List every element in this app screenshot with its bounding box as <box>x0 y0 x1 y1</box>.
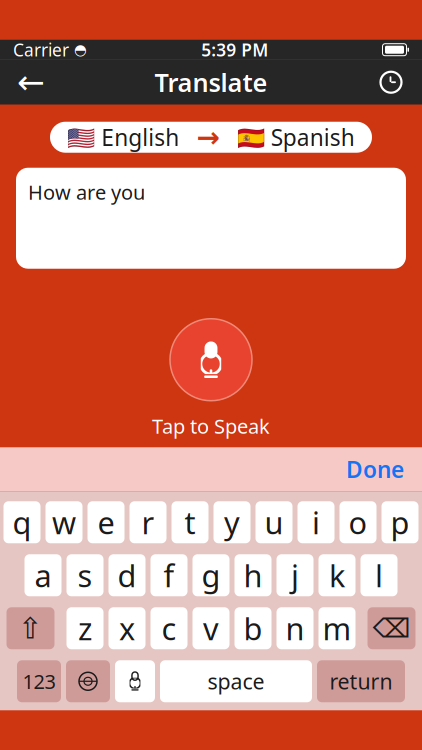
button[interactable]: Delete <box>367 607 415 649</box>
button[interactable]: g <box>192 554 229 596</box>
staticText: p <box>390 502 409 543</box>
button[interactable]: 123 <box>17 660 61 702</box>
staticText: return <box>329 667 392 695</box>
staticText: z <box>78 608 92 649</box>
staticText: y <box>224 502 240 543</box>
staticText: s <box>77 555 92 596</box>
staticText: q <box>12 502 31 543</box>
button[interactable]: n <box>276 607 313 649</box>
staticText: r <box>141 502 154 543</box>
button[interactable]: d <box>108 554 145 596</box>
staticText: 5:39 PM <box>201 38 268 61</box>
staticText: e <box>97 502 114 543</box>
button[interactable]: q <box>3 501 40 543</box>
button[interactable]: z <box>66 607 103 649</box>
staticText: 🇪🇸 Spanish <box>237 122 355 152</box>
staticText: ⇧ <box>18 612 43 645</box>
button[interactable]: space <box>160 660 312 702</box>
button[interactable]: e <box>87 501 124 543</box>
staticText: 123 <box>22 668 55 695</box>
button[interactable]: Shift <box>6 607 54 649</box>
button[interactable]: b <box>234 607 271 649</box>
button[interactable]: r <box>129 501 166 543</box>
staticText: How are you <box>28 179 145 205</box>
staticText: o <box>348 502 367 543</box>
button[interactable]: m <box>318 607 355 649</box>
staticText: c <box>161 608 176 649</box>
staticText: j <box>291 555 299 596</box>
staticText: Carrier <box>13 38 69 61</box>
button[interactable]: Back <box>0 60 62 105</box>
button[interactable]: t <box>171 501 208 543</box>
staticText: Done <box>346 454 404 484</box>
staticText: u <box>264 502 283 543</box>
staticText: ◓ <box>69 41 87 58</box>
staticText: k <box>329 555 345 596</box>
button[interactable]: l <box>360 554 397 596</box>
staticText: ⌫ <box>372 613 410 643</box>
staticText: → <box>196 121 219 153</box>
staticText: f <box>163 555 174 596</box>
staticText: x <box>119 608 135 649</box>
staticText: m <box>322 608 351 649</box>
staticText: Tap to Speak <box>152 413 270 439</box>
staticText: l <box>375 555 383 596</box>
button[interactable]: s <box>66 554 103 596</box>
staticText: d <box>117 555 136 596</box>
button[interactable]: a <box>24 554 61 596</box>
staticText: a <box>34 555 51 596</box>
staticText: b <box>243 608 262 649</box>
button[interactable]: w <box>45 501 82 543</box>
staticText: v <box>203 608 219 649</box>
button[interactable]: y <box>213 501 250 543</box>
staticText: h <box>243 555 262 596</box>
button[interactable]: Done <box>328 447 422 491</box>
staticText: n <box>285 608 304 649</box>
button[interactable]: return <box>317 660 405 702</box>
button[interactable]: o <box>339 501 376 543</box>
button[interactable]: i <box>297 501 334 543</box>
button[interactable]: k <box>318 554 355 596</box>
button[interactable]: p <box>381 501 418 543</box>
staticText: space <box>207 667 264 695</box>
staticText: i <box>312 502 320 543</box>
button[interactable]: 🇺🇸 English <box>50 122 372 153</box>
button[interactable]: Dictation <box>115 660 155 702</box>
staticText: ← <box>17 63 45 101</box>
button[interactable]: u <box>255 501 292 543</box>
staticText: Translate <box>154 65 267 99</box>
button[interactable]: History <box>360 60 422 105</box>
staticText: 🇺🇸 English <box>67 122 179 152</box>
button[interactable]: Next keyboard <box>66 660 110 702</box>
button[interactable]: c <box>150 607 187 649</box>
button[interactable]: v <box>192 607 229 649</box>
staticText: t <box>184 502 195 543</box>
button[interactable]: f <box>150 554 187 596</box>
button[interactable]: x <box>108 607 145 649</box>
button[interactable]: j <box>276 554 313 596</box>
staticText: w <box>52 502 76 543</box>
button[interactable]: h <box>234 554 271 596</box>
button[interactable]: Tap to Speak <box>170 319 252 401</box>
staticText: g <box>201 555 220 596</box>
